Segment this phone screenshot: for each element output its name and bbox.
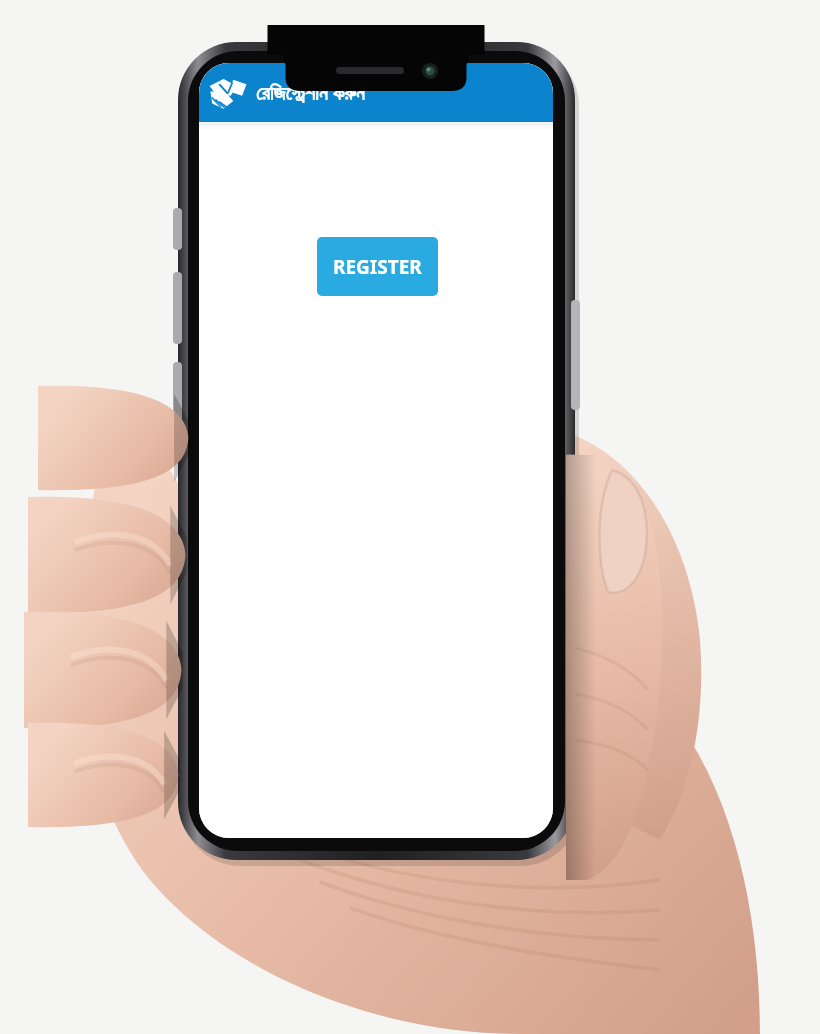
- staticText: REGISTER: [333, 254, 422, 280]
- staticText: রেজিস্ট্রেশান করুন: [256, 79, 365, 106]
- other: Handshake logo: [206, 71, 250, 115]
- button[interactable]: Handshake logo: [199, 63, 553, 122]
- button[interactable]: REGISTER: [317, 237, 438, 296]
